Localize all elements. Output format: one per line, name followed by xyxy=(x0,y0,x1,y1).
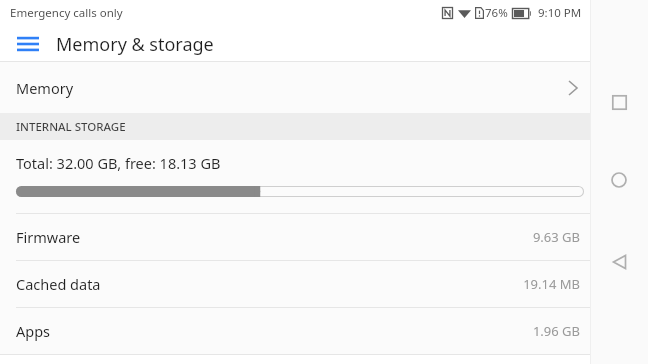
staticText: Total: 32.00 GB, free: 18.13 GB xyxy=(16,153,221,173)
staticText: Firmware xyxy=(16,227,81,247)
staticText: Apps xyxy=(16,321,51,341)
button[interactable]: Back xyxy=(602,245,636,279)
button[interactable]: Memory xyxy=(0,62,590,113)
staticText: INTERNAL STORAGE xyxy=(16,119,126,135)
staticText: Cached data xyxy=(16,274,101,294)
staticText: 9.63 GB xyxy=(532,228,580,246)
staticText: 1.96 GB xyxy=(532,322,580,340)
button[interactable]: Recent apps xyxy=(602,85,636,119)
button[interactable]: Home xyxy=(602,163,636,197)
staticText: Memory & storage xyxy=(56,32,214,57)
staticText: 19.14 MB xyxy=(523,275,580,293)
button[interactable]: Firmware xyxy=(0,214,590,260)
button[interactable]: Apps xyxy=(0,308,590,354)
staticText: Memory xyxy=(16,78,74,98)
staticText: 76% xyxy=(485,5,508,21)
staticText: 9:10 PM xyxy=(538,5,582,21)
button[interactable]: Open navigation menu xyxy=(12,28,44,60)
button[interactable]: Cached data xyxy=(0,261,590,307)
staticText: Emergency calls only xyxy=(10,5,123,21)
